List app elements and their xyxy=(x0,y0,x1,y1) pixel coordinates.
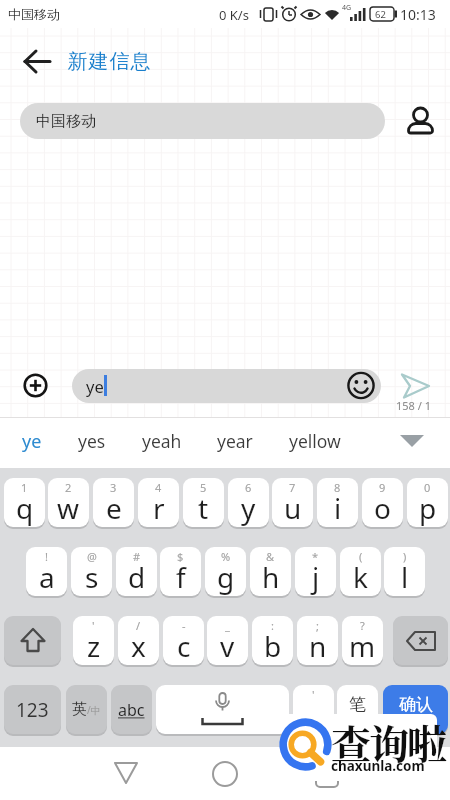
staticText: c xyxy=(177,627,191,665)
staticText: s xyxy=(85,558,99,596)
staticText: t xyxy=(198,489,209,527)
button[interactable]: ( xyxy=(340,547,381,596)
button[interactable]: ' xyxy=(293,685,334,734)
button[interactable]: * xyxy=(295,547,336,596)
button[interactable]: ' xyxy=(73,616,114,665)
staticText: # xyxy=(133,549,141,564)
staticText: ) xyxy=(403,549,407,564)
staticText: q xyxy=(16,489,34,527)
button[interactable]: year xyxy=(206,424,264,458)
staticText: 中国移动 xyxy=(36,112,96,131)
staticText: 中国移动 xyxy=(8,6,60,22)
button[interactable]: 5 xyxy=(183,478,224,527)
button[interactable]: 确认 xyxy=(383,685,448,734)
button[interactable]: 123 xyxy=(4,685,61,734)
staticText: ' xyxy=(92,618,95,633)
staticText: n xyxy=(309,627,327,665)
button[interactable] xyxy=(4,616,61,665)
staticText: v xyxy=(220,627,235,665)
button[interactable]: 中国移动 xyxy=(20,103,385,139)
staticText: year xyxy=(217,429,253,453)
button[interactable]: : xyxy=(252,616,293,665)
button[interactable] xyxy=(396,430,430,454)
button[interactable]: yeah xyxy=(130,424,194,458)
staticText: - xyxy=(182,618,186,633)
button[interactable]: ; xyxy=(297,616,338,665)
staticText: 0 xyxy=(424,480,431,495)
button[interactable]: ye xyxy=(72,369,381,403)
button[interactable]: & xyxy=(250,547,291,596)
button[interactable] xyxy=(20,46,54,76)
button[interactable]: 9 xyxy=(362,478,403,527)
staticText: ! xyxy=(45,549,48,564)
button[interactable]: 4 xyxy=(138,478,179,527)
button[interactable]: # xyxy=(116,547,157,596)
button[interactable]: % xyxy=(205,547,246,596)
button[interactable]: 2 xyxy=(48,478,89,527)
staticText: : xyxy=(271,618,274,633)
button[interactable]: ) xyxy=(384,547,425,596)
button[interactable]: - xyxy=(163,616,204,665)
button[interactable] xyxy=(112,758,142,788)
staticText: 2 xyxy=(65,480,72,495)
button[interactable] xyxy=(156,685,289,734)
button[interactable] xyxy=(398,370,434,402)
button[interactable]: ! xyxy=(26,547,67,596)
button[interactable]: 0 xyxy=(407,478,448,527)
staticText: yeah xyxy=(142,429,182,453)
button[interactable]: @ xyxy=(71,547,112,596)
button[interactable]: 7 xyxy=(272,478,313,527)
staticText: 1 xyxy=(21,480,28,495)
button[interactable] xyxy=(345,369,378,402)
staticText: / xyxy=(136,618,141,633)
staticText: i xyxy=(334,489,342,527)
staticText: ( xyxy=(359,549,363,564)
button[interactable]: 英/中 xyxy=(66,685,107,734)
staticText: 6 xyxy=(245,480,252,495)
button[interactable]: 笔 xyxy=(337,685,378,734)
staticText: ye xyxy=(86,375,104,397)
button[interactable]: ? xyxy=(342,616,383,665)
button[interactable] xyxy=(405,103,441,139)
staticText: , xyxy=(311,697,317,724)
button[interactable]: 8 xyxy=(317,478,358,527)
button[interactable] xyxy=(210,758,242,790)
staticText: a xyxy=(39,558,55,596)
staticText: $ xyxy=(177,549,184,564)
staticText: e xyxy=(106,489,122,527)
staticText: & xyxy=(266,549,275,564)
staticText: 158 / 1 xyxy=(396,398,431,413)
staticText: 3 xyxy=(110,480,117,495)
staticText: 笔 xyxy=(349,694,366,715)
button[interactable] xyxy=(312,760,342,790)
staticText: f xyxy=(176,558,186,596)
button[interactable]: 3 xyxy=(93,478,134,527)
staticText: _ xyxy=(225,618,230,633)
button[interactable]: 6 xyxy=(228,478,269,527)
staticText: 62 xyxy=(375,8,386,21)
staticText: w xyxy=(57,489,80,527)
button[interactable]: abc xyxy=(111,685,152,734)
staticText: p xyxy=(419,489,437,527)
staticText: 7 xyxy=(289,480,296,495)
staticText: y xyxy=(241,489,256,527)
button[interactable] xyxy=(20,370,51,401)
staticText: 确认 xyxy=(399,694,433,715)
button[interactable]: _ xyxy=(207,616,248,665)
staticText: % xyxy=(221,549,231,564)
staticText: 8 xyxy=(334,480,341,495)
button[interactable] xyxy=(393,616,448,665)
button[interactable]: $ xyxy=(160,547,201,596)
button[interactable]: ye xyxy=(12,424,52,458)
staticText: x xyxy=(131,627,146,665)
staticText: abc xyxy=(118,699,145,721)
staticText: h xyxy=(262,558,280,596)
button[interactable]: / xyxy=(118,616,159,665)
staticText: 英/中 xyxy=(72,700,101,719)
staticText: 新建信息 xyxy=(67,49,151,74)
button[interactable]: 1 xyxy=(4,478,45,527)
staticText: g xyxy=(217,558,235,596)
button[interactable]: yes xyxy=(66,424,118,458)
staticText: 9 xyxy=(379,480,386,495)
button[interactable]: yellow xyxy=(278,424,352,458)
